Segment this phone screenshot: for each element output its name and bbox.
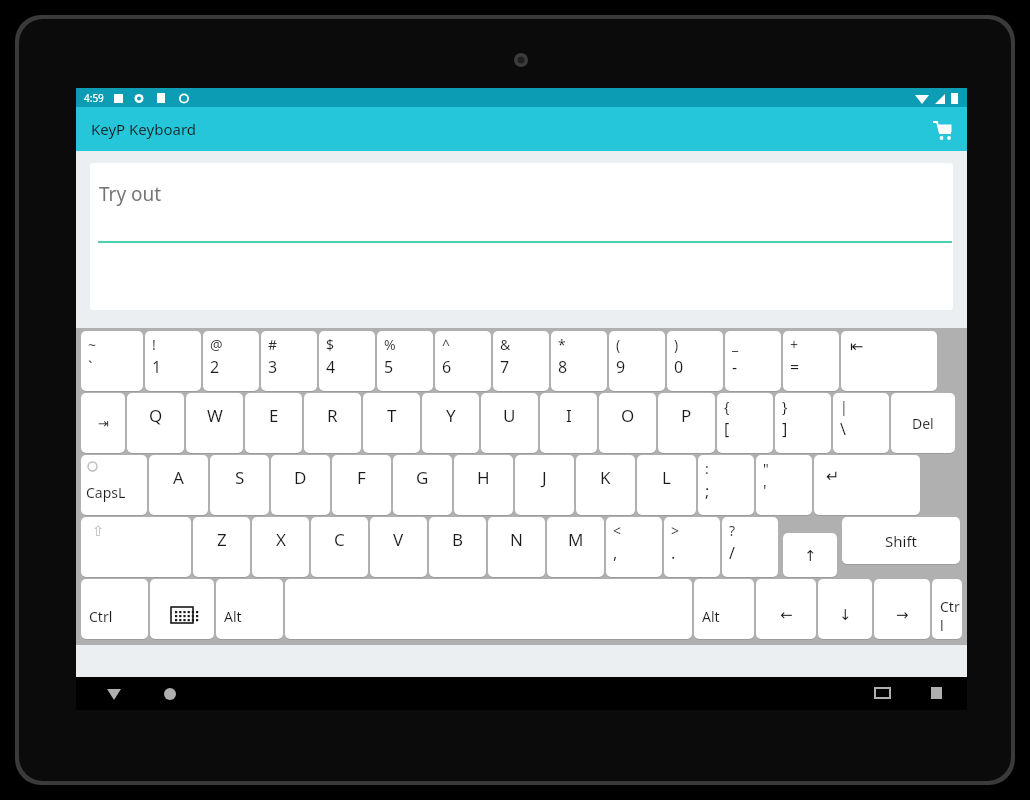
staticText: Try out [99, 181, 162, 207]
button[interactable]: ~ [81, 331, 143, 391]
button[interactable]: Del [891, 393, 955, 453]
button[interactable]: D [271, 455, 330, 515]
button[interactable]: " [756, 455, 812, 515]
button[interactable]: R [304, 393, 361, 453]
button[interactable]: C [311, 517, 368, 577]
staticText: J [542, 466, 547, 489]
other: Left [755, 578, 817, 640]
button[interactable]: { [717, 393, 773, 453]
staticText: | [840, 397, 848, 416]
staticText: T [387, 404, 397, 427]
staticText: W [207, 404, 223, 427]
button[interactable]: I [540, 393, 597, 453]
staticText: 0 [674, 356, 684, 378]
staticText: 9 [616, 356, 626, 378]
button[interactable]: ⇤ [841, 331, 937, 391]
staticText: # [268, 335, 278, 354]
staticText: ( [616, 335, 621, 354]
staticText: X [276, 528, 286, 551]
button[interactable]: Shop [923, 111, 959, 147]
button[interactable]: L [637, 455, 696, 515]
button[interactable]: X [252, 517, 309, 577]
button[interactable]: $ [319, 331, 375, 391]
button[interactable]: } [775, 393, 831, 453]
staticText: 5 [384, 356, 394, 378]
button[interactable]: # [261, 331, 317, 391]
button[interactable]: Alt [216, 579, 283, 639]
staticText: D [294, 466, 307, 489]
staticText: R [327, 404, 338, 427]
button[interactable]: ← [756, 579, 816, 639]
button[interactable]: < [606, 517, 662, 577]
staticText: U [503, 404, 516, 427]
button[interactable]: & [493, 331, 549, 391]
staticText: * [558, 335, 566, 354]
button[interactable]: Try out [90, 163, 953, 310]
staticText: ! [152, 335, 156, 354]
button[interactable]: ^ [435, 331, 491, 391]
button[interactable]: ↑ [783, 533, 837, 577]
button[interactable]: ? [722, 517, 778, 577]
staticText: ] [782, 418, 788, 440]
button[interactable]: Ctrl [932, 579, 962, 639]
button[interactable]: G [393, 455, 452, 515]
button[interactable]: H [454, 455, 513, 515]
button[interactable]: T [363, 393, 420, 453]
button[interactable]: > [664, 517, 720, 577]
button[interactable]: P [658, 393, 715, 453]
button[interactable]: CapsL [81, 455, 147, 515]
staticText: B [452, 528, 464, 551]
staticText: / [729, 542, 735, 564]
button[interactable]: ↵ [814, 455, 920, 515]
staticText: = [790, 356, 800, 378]
button[interactable]: ) [667, 331, 723, 391]
staticText: ^ [442, 335, 451, 354]
button[interactable]: M [547, 517, 604, 577]
other: Down [817, 578, 873, 640]
button[interactable]: ⇧ [81, 517, 191, 577]
button[interactable]: Q [127, 393, 184, 453]
button[interactable]: Shift [842, 517, 960, 564]
button[interactable]: E [245, 393, 302, 453]
staticText: M [568, 528, 584, 551]
staticText: Shift [885, 531, 917, 551]
button[interactable]: B [429, 517, 486, 577]
button[interactable] [150, 579, 214, 639]
button[interactable]: O [599, 393, 656, 453]
button[interactable]: Alt [694, 579, 754, 639]
button[interactable]: F [332, 455, 391, 515]
button[interactable]: @ [203, 331, 259, 391]
button[interactable]: : [698, 455, 754, 515]
staticText: E [269, 404, 279, 427]
button[interactable]: N [488, 517, 545, 577]
staticText: . [671, 542, 676, 564]
button[interactable]: _ [725, 331, 781, 391]
button[interactable]: | [833, 393, 889, 453]
button[interactable]: Z [193, 517, 250, 577]
button[interactable]: → [874, 579, 930, 639]
button[interactable]: K [576, 455, 635, 515]
button[interactable]: ↓ [818, 579, 872, 639]
button[interactable]: S [210, 455, 269, 515]
staticText: L [662, 466, 671, 489]
button[interactable]: Ctrl [81, 579, 148, 639]
button[interactable]: U [481, 393, 538, 453]
button[interactable]: + [783, 331, 839, 391]
button[interactable]: ( [609, 331, 665, 391]
staticText: > [671, 521, 680, 540]
button[interactable]: % [377, 331, 433, 391]
staticText: ; [705, 480, 710, 502]
button[interactable]: ! [145, 331, 201, 391]
button[interactable]: J [515, 455, 574, 515]
button[interactable]: W [186, 393, 243, 453]
other: Right [873, 578, 931, 640]
button[interactable]: * [551, 331, 607, 391]
button[interactable]: A [149, 455, 208, 515]
button[interactable]: V [370, 517, 427, 577]
staticText: A [173, 466, 184, 489]
staticText: 2 [210, 356, 220, 378]
staticText: ~ [88, 335, 97, 354]
button[interactable]: ⇥ [81, 393, 125, 453]
button[interactable]: Y [422, 393, 479, 453]
